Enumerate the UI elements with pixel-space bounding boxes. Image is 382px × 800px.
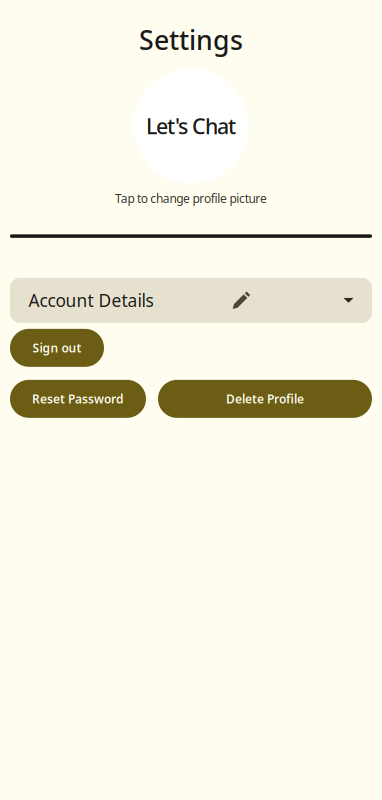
staticText: Settings: [139, 22, 243, 57]
button[interactable]: Account Details: [10, 278, 372, 323]
staticText: Reset Password: [32, 391, 124, 407]
staticText: Let's Chat: [146, 112, 236, 140]
staticText: Delete Profile: [226, 391, 304, 407]
button[interactable]: Change profile picture: [133, 68, 248, 183]
button[interactable]: Delete Profile: [158, 380, 372, 418]
staticText: Account Details: [29, 289, 154, 312]
button[interactable]: Reset Password: [10, 380, 146, 418]
button[interactable]: Tap to change profile picture: [115, 190, 267, 206]
staticText: Sign out: [32, 340, 81, 356]
button[interactable]: Sign out: [10, 329, 104, 367]
staticText: Tap to change profile picture: [115, 190, 267, 206]
